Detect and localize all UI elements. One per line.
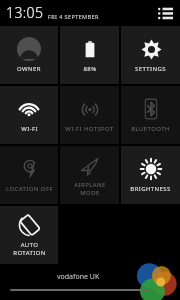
button[interactable]: Bluetooth — [121, 86, 180, 144]
staticText: LOCATION OFF — [6, 185, 53, 193]
staticText: BLUETOOTH — [131, 125, 170, 133]
staticText: AIRPLANE MODE — [74, 181, 106, 197]
staticText: vodafone UK — [57, 272, 100, 282]
button[interactable]: Settings — [121, 26, 180, 84]
staticText: OWNER — [17, 65, 41, 73]
button[interactable]: Brightness — [121, 146, 180, 204]
button[interactable]: Owner profile — [0, 26, 58, 84]
button[interactable]: Location off — [0, 146, 58, 204]
button[interactable]: Wi-Fi — [0, 86, 58, 144]
staticText: BRIGHTNESS — [130, 185, 171, 193]
button[interactable]: Quick settings list — [158, 5, 173, 20]
staticText: FRI 4 SEPTEMBER — [48, 13, 99, 20]
button[interactable]: Airplane mode — [60, 146, 119, 204]
button[interactable]: Wi-Fi hotspot — [60, 86, 119, 144]
staticText: AUTO ROTATION — [13, 241, 46, 257]
staticText: SETTINGS — [135, 65, 166, 73]
button[interactable]: Auto rotation — [0, 206, 58, 264]
button[interactable]: Battery 88 percent — [60, 26, 119, 84]
staticText: WI-FI HOTSPOT — [65, 125, 114, 133]
staticText: 88% — [83, 65, 97, 73]
staticText: 13:05 — [6, 3, 44, 22]
staticText: WI-FI — [21, 125, 38, 133]
